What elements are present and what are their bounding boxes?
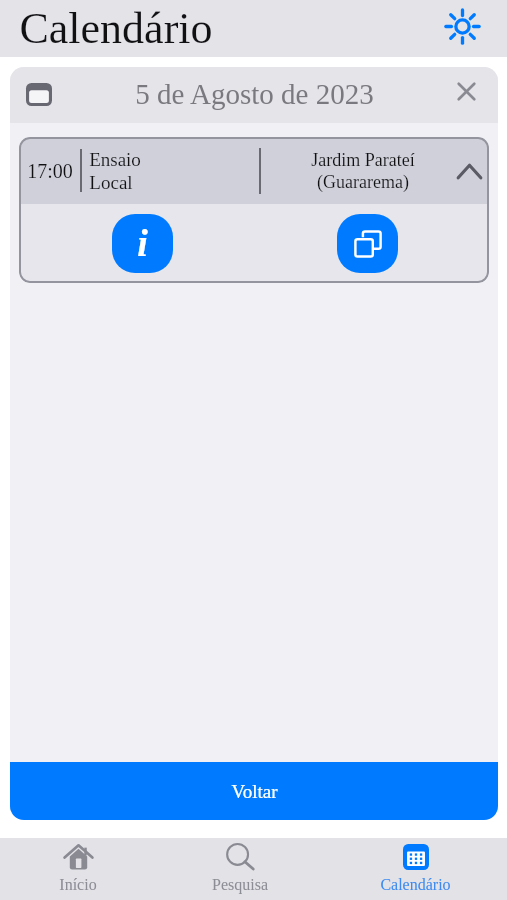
staticText: 17:00 bbox=[27, 160, 73, 182]
staticText: Início bbox=[59, 876, 97, 894]
staticText: 5 de Agosto de 2023 bbox=[135, 78, 374, 110]
button[interactable]: Brightness bbox=[442, 6, 482, 46]
staticText: (Guararema) bbox=[317, 172, 409, 192]
staticText: Calendário bbox=[19, 4, 213, 53]
staticText: i bbox=[137, 222, 148, 264]
button[interactable]: Duplicate bbox=[337, 214, 398, 273]
staticText: Pesquisa bbox=[212, 876, 268, 894]
staticText: Calendário bbox=[380, 876, 451, 894]
button[interactable]: Calendário bbox=[324, 838, 507, 900]
button[interactable]: Info bbox=[112, 214, 173, 273]
button[interactable]: Início bbox=[0, 838, 156, 900]
button[interactable]: 17:00 bbox=[19, 137, 489, 204]
staticText: Jardim Parateí bbox=[311, 150, 415, 170]
button[interactable]: Collapse bbox=[452, 154, 486, 188]
button[interactable]: Pesquisa bbox=[156, 838, 324, 900]
staticText: Local bbox=[89, 172, 133, 193]
staticText: Voltar bbox=[231, 781, 278, 802]
staticText: Ensaio bbox=[89, 149, 141, 170]
button[interactable]: Close bbox=[449, 74, 483, 108]
button[interactable]: Voltar bbox=[10, 762, 498, 820]
button[interactable]: Calendar view bbox=[22, 77, 56, 111]
